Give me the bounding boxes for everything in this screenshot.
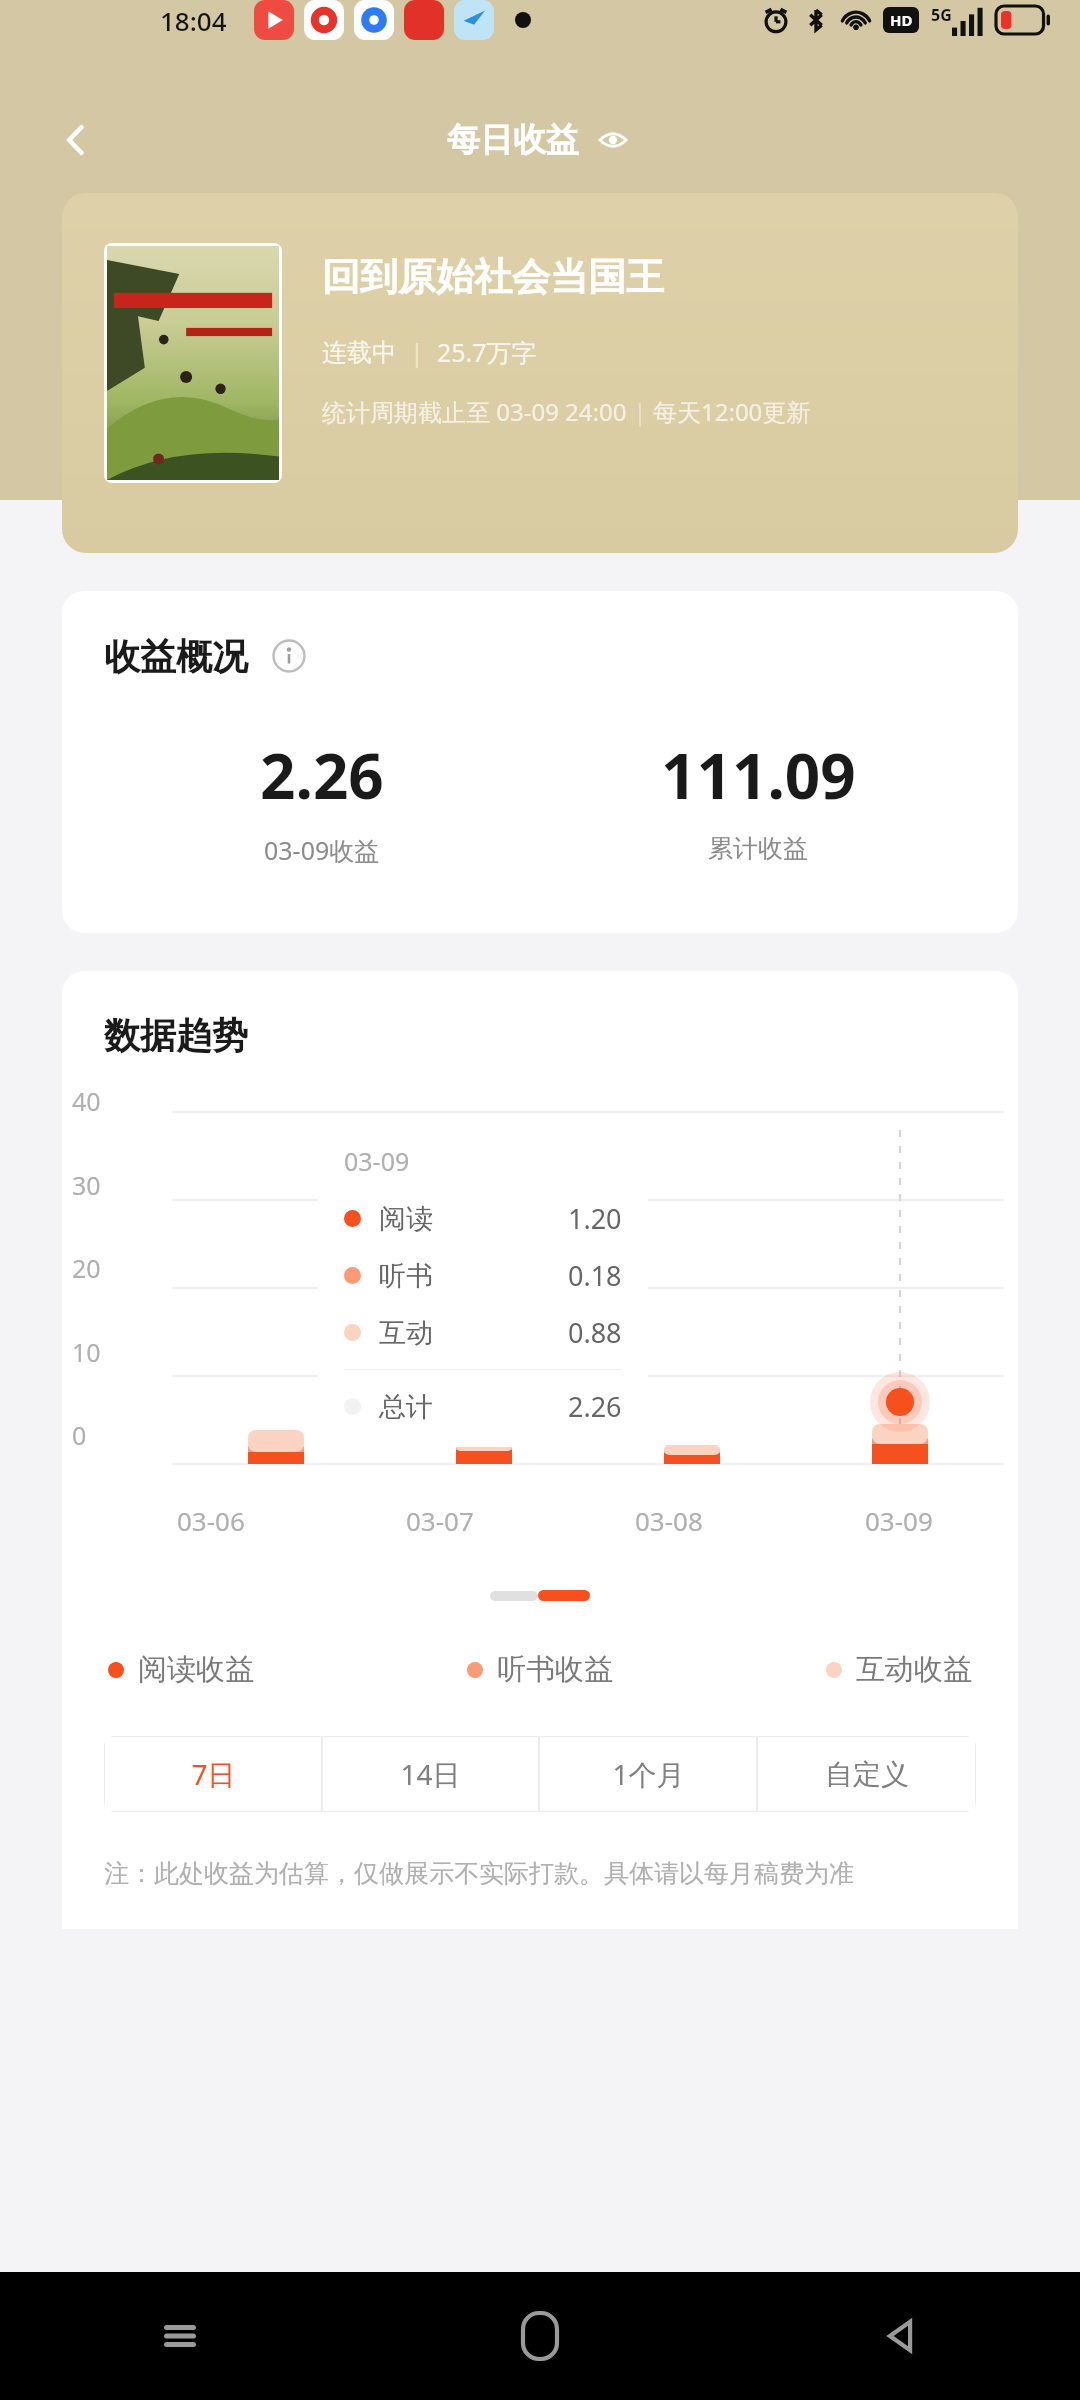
button[interactable]: Back bbox=[720, 2272, 1080, 2400]
button[interactable]: 7日 bbox=[105, 1737, 321, 1811]
staticText: 2.26 bbox=[260, 733, 384, 817]
staticText: 每天12:00更新 bbox=[653, 395, 811, 428]
staticText: 累计收益 bbox=[708, 833, 808, 864]
staticText: 统计周期截止至 03-09 24:00 bbox=[322, 395, 627, 428]
button[interactable]: Toggle visibility bbox=[593, 120, 633, 160]
staticText: 1个月 bbox=[612, 1755, 685, 1793]
staticText: 收益概况 bbox=[104, 634, 248, 679]
staticText: 注：此处收益为估算，仅做展示不实际打款。具体请以每月稿费为准 bbox=[104, 1858, 854, 1889]
staticText: 03-09 bbox=[865, 1503, 933, 1538]
staticText: 111.09 bbox=[661, 733, 856, 817]
staticText: 1.20 bbox=[568, 1200, 622, 1237]
staticText: 03-06 bbox=[177, 1503, 245, 1538]
staticText: 阅读收益 bbox=[138, 1651, 254, 1688]
staticText: 0.18 bbox=[568, 1257, 622, 1294]
staticText: 互动收益 bbox=[856, 1651, 972, 1688]
staticText: 14日 bbox=[400, 1755, 461, 1793]
staticText: 40 bbox=[72, 1084, 101, 1118]
staticText: 互动 bbox=[379, 1316, 433, 1350]
staticText: 数据趋势 bbox=[104, 1013, 248, 1058]
staticText: 总计 bbox=[379, 1390, 433, 1424]
staticText: 听书收益 bbox=[497, 1651, 613, 1688]
staticText: 03-08 bbox=[635, 1503, 703, 1538]
staticText: 阅读 bbox=[379, 1202, 433, 1236]
staticText: 10 bbox=[72, 1335, 101, 1369]
staticText: 回到原始社会当国王 bbox=[322, 253, 664, 301]
button[interactable]: 1个月 bbox=[540, 1737, 756, 1811]
button[interactable]: Earnings info bbox=[266, 633, 312, 679]
button[interactable]: 自定义 bbox=[758, 1737, 975, 1811]
staticText: 03-09 bbox=[344, 1144, 410, 1178]
button[interactable]: 14日 bbox=[323, 1737, 538, 1811]
staticText: 2.26 bbox=[568, 1388, 622, 1425]
staticText: 听书 bbox=[379, 1259, 433, 1293]
staticText: 20 bbox=[72, 1251, 101, 1285]
button[interactable]: Back bbox=[44, 108, 108, 172]
staticText: 18:04 bbox=[160, 3, 227, 38]
staticText: 0 bbox=[72, 1418, 87, 1452]
staticText: 自定义 bbox=[825, 1757, 909, 1792]
staticText: 0.88 bbox=[568, 1314, 622, 1351]
button[interactable]: 回到原始社会当国王 bbox=[62, 193, 1018, 553]
staticText: HD bbox=[890, 10, 913, 30]
staticText: 7日 bbox=[191, 1755, 236, 1793]
staticText: 03-09收益 bbox=[264, 833, 380, 867]
staticText: 连载中 bbox=[322, 337, 397, 368]
staticText: | bbox=[397, 335, 437, 369]
staticText: 每日收益 bbox=[447, 119, 579, 161]
staticText: 30 bbox=[72, 1168, 101, 1202]
staticText: 25.7万字 bbox=[437, 335, 537, 369]
button[interactable]: Recent apps bbox=[0, 2272, 360, 2400]
staticText: 5G bbox=[931, 4, 952, 26]
staticText: | bbox=[627, 395, 653, 428]
staticText: 03-07 bbox=[406, 1503, 474, 1538]
button[interactable]: Home bbox=[360, 2272, 720, 2400]
